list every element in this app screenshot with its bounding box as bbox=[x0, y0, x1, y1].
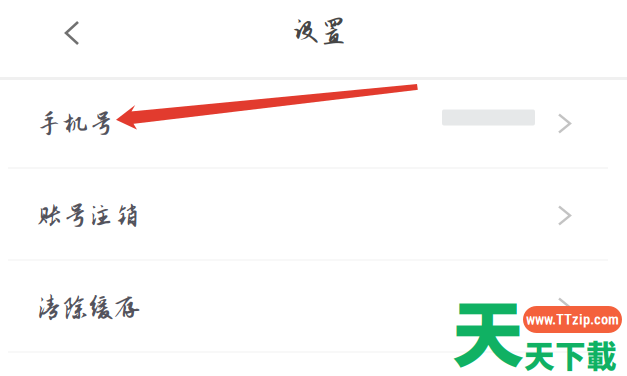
staticText: 天 bbox=[452, 277, 524, 376]
staticText: 手机号 bbox=[36, 109, 114, 138]
staticText: 天下載 bbox=[524, 332, 617, 376]
staticText: 清除缓存 bbox=[36, 293, 140, 322]
staticText: 设置 bbox=[292, 16, 348, 47]
button[interactable]: 手机号 bbox=[0, 80, 627, 167]
button[interactable]: 账号注销 bbox=[0, 172, 627, 259]
staticText: www.TTzip.com bbox=[526, 311, 619, 328]
button[interactable]: 清除缓存 bbox=[0, 264, 627, 351]
button[interactable]: Back bbox=[44, 5, 100, 61]
staticText: 账号注销 bbox=[36, 201, 140, 230]
